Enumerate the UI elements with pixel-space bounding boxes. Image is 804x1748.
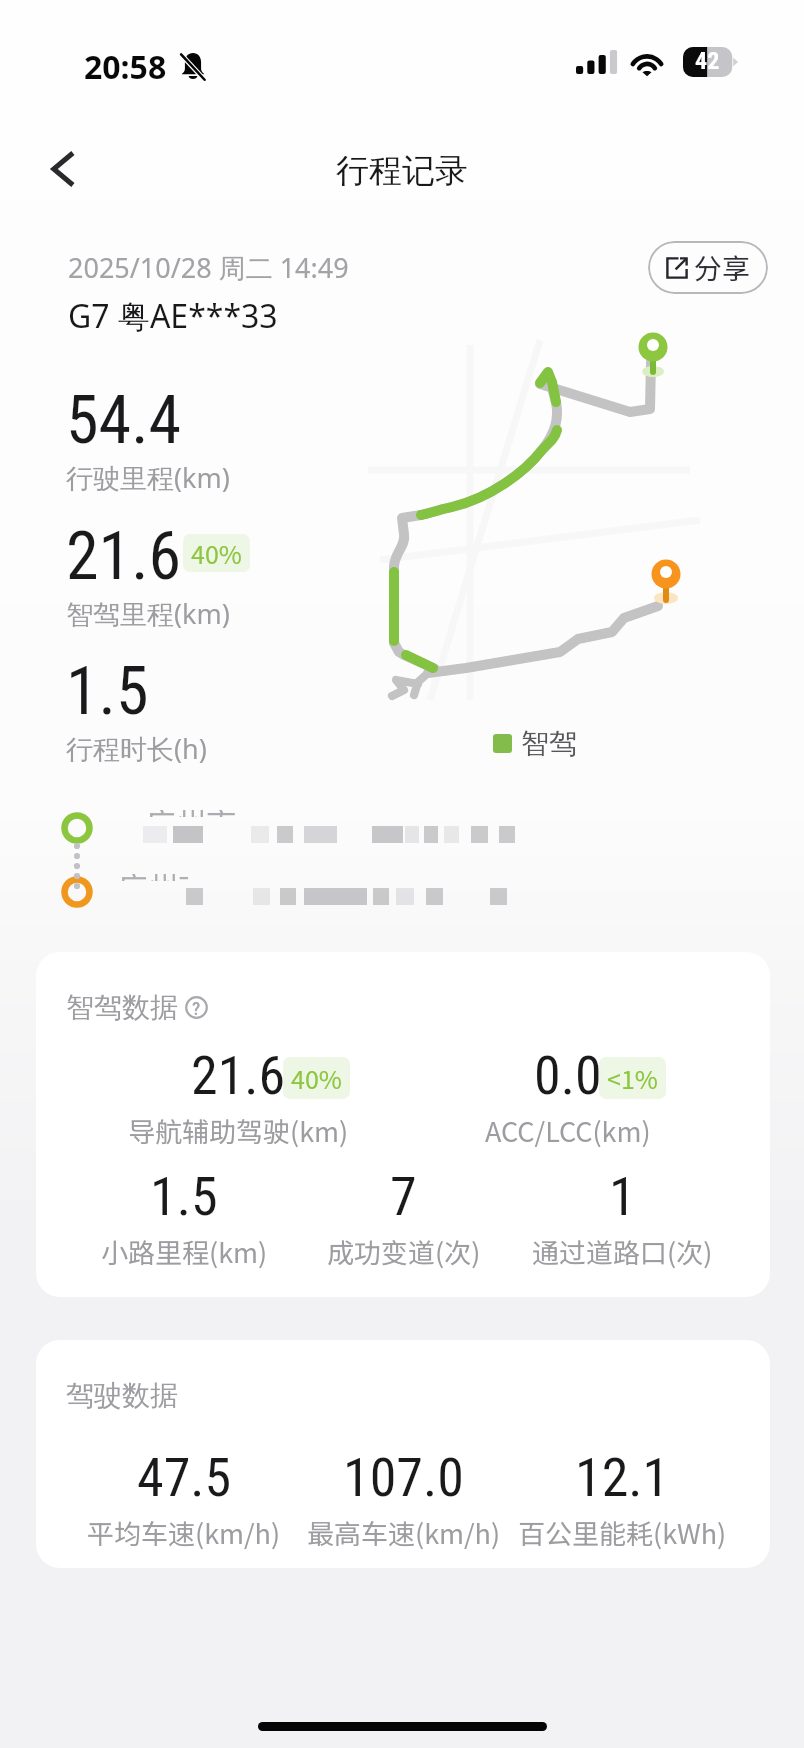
staticText: 0.0 [534, 1044, 602, 1107]
staticText: 行程记录 [0, 150, 804, 192]
staticText: 1.5 [66, 653, 149, 730]
staticText: 47.5 [137, 1446, 232, 1509]
staticText: 小路里程(km) [101, 1232, 268, 1271]
staticText: 21.6 [66, 518, 182, 595]
staticText: 导航辅助驾驶(km) [128, 1111, 349, 1150]
staticText: 智驾数据 [66, 990, 178, 1025]
staticText: 智驾 [521, 726, 577, 761]
staticText: 广州市天河区中山大道 [146, 810, 236, 817]
staticText: 40% [191, 535, 242, 571]
staticText: 107.0 [343, 1446, 464, 1509]
staticText: 平均车速(km/h) [87, 1513, 281, 1552]
staticText: G7 粤AE***33 [68, 294, 278, 338]
staticText: 1 [609, 1165, 636, 1228]
staticText: 分享 [694, 247, 751, 288]
staticText: 54.4 [66, 382, 182, 459]
button[interactable]: 分享 [648, 241, 768, 294]
staticText: 42 [695, 47, 720, 75]
staticText: 40% [291, 1060, 342, 1096]
staticText: 1.5 [150, 1165, 218, 1228]
staticText: <1% [607, 1060, 658, 1096]
staticText: 广州市番禺区大学城 [118, 874, 188, 881]
button[interactable]: Back [32, 138, 94, 200]
staticText: 行程时长(h) [66, 730, 207, 767]
staticText: 驾驶数据 [66, 1378, 178, 1413]
staticText: 智驾里程(km) [66, 595, 230, 632]
staticText: 7 [390, 1165, 417, 1228]
staticText: 21.6 [191, 1044, 286, 1107]
staticText: 百公里能耗(kWh) [518, 1513, 727, 1552]
staticText: 12.1 [575, 1446, 670, 1509]
staticText: 成功变道(次) [327, 1232, 481, 1271]
staticText: 最高车速(km/h) [307, 1513, 501, 1552]
staticText: 20:58 [84, 45, 167, 89]
staticText: ACC/LCC(km) [485, 1111, 651, 1150]
staticText: 通过道路口(次) [532, 1232, 713, 1271]
staticText: 2025/10/28 周二 14:49 [68, 249, 349, 286]
staticText: ? [192, 997, 201, 1019]
staticText: 行驶里程(km) [66, 459, 230, 496]
